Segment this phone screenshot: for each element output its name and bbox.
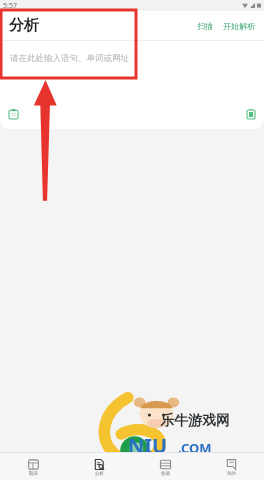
button[interactable]: 开始解析	[218, 18, 260, 34]
button[interactable]: 请在此处输入语句、单词或网址	[0, 41, 264, 99]
button[interactable]: 我的	[198, 453, 264, 480]
staticText: 我的	[227, 471, 236, 477]
staticText: 5:57	[3, 1, 17, 11]
staticText: 分析	[9, 16, 39, 35]
button[interactable]: 收藏	[132, 453, 198, 480]
staticText: .COM	[178, 439, 212, 457]
button[interactable]: 翻译	[0, 453, 66, 480]
staticText: 请在此处输入语句、单词或网址	[10, 53, 129, 64]
staticText: 乐牛游戏网	[160, 412, 230, 430]
button[interactable]: Paste from clipboard	[6, 106, 21, 122]
staticText: 开始解析	[223, 21, 255, 31]
staticText: 翻译	[29, 471, 38, 477]
staticText: 扫描	[197, 21, 213, 31]
staticText: 分析	[95, 471, 104, 477]
button[interactable]: 扫描	[192, 18, 218, 34]
button[interactable]: 分析	[66, 453, 132, 480]
button[interactable]: Clear text	[244, 106, 258, 122]
staticText: NIU	[128, 432, 168, 459]
staticText: 收藏	[161, 471, 170, 477]
